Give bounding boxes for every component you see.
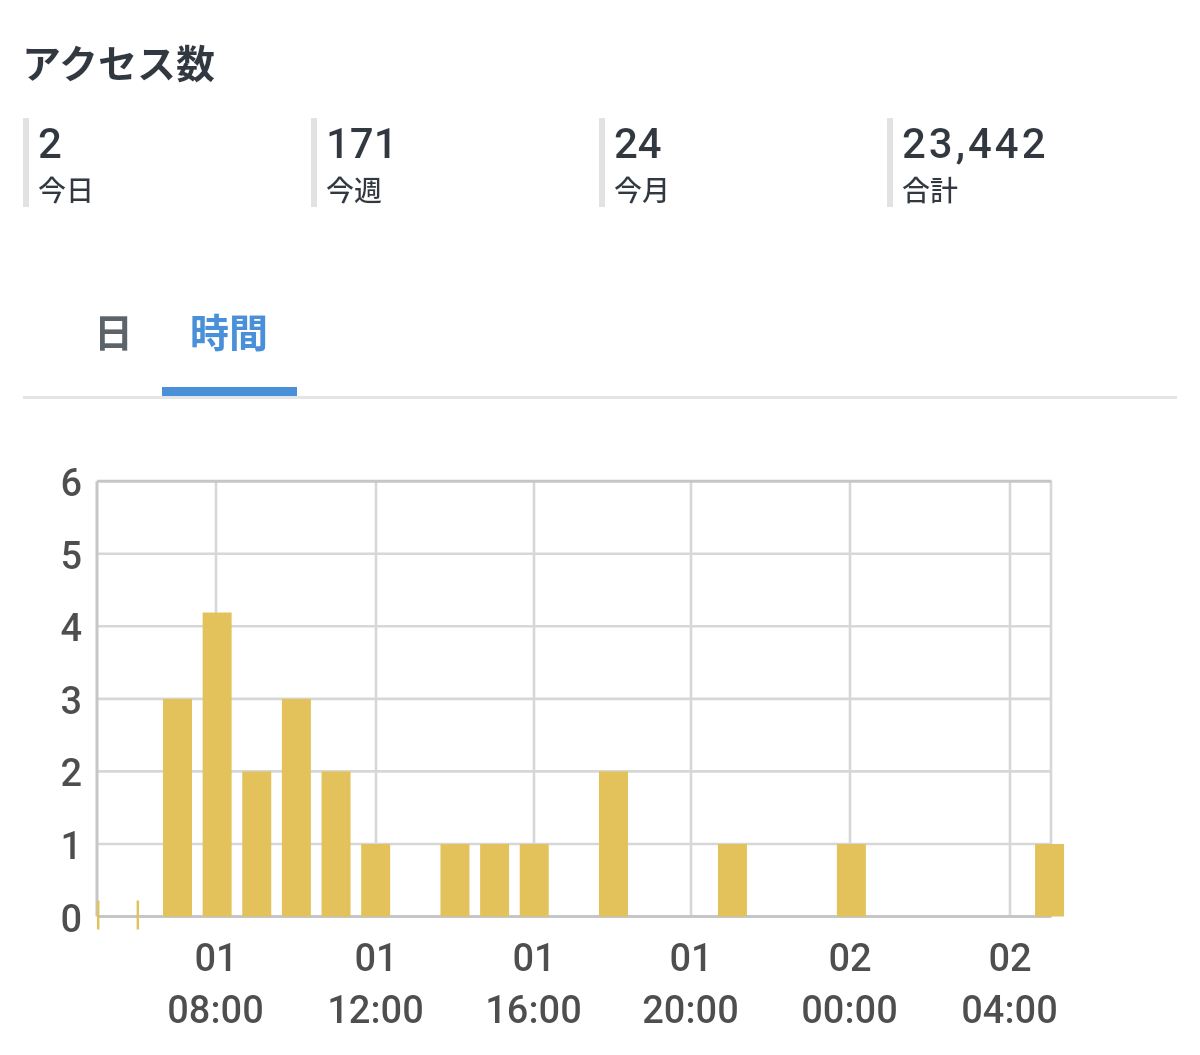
staticText: 今週 [326,169,383,207]
staticText: 合計 [902,169,959,207]
staticText: 01 [512,936,556,981]
staticText: 5 [60,534,82,579]
staticText: 1 [60,824,82,869]
button[interactable]: 日 [27,292,200,388]
staticText: 24 [614,119,662,168]
staticText: 今日 [38,169,95,207]
button[interactable]: 2 [23,118,95,207]
staticText: 08:00 [167,988,264,1033]
button[interactable]: 171 [311,118,398,207]
staticText: 2 [60,751,82,796]
staticText: 2 [38,119,62,168]
staticText: 02 [988,936,1032,981]
button[interactable]: 24 [599,118,671,207]
staticText: 日 [94,302,134,358]
staticText: 02 [828,936,872,981]
staticText: 00:00 [801,988,898,1033]
staticText: 3 [60,679,82,724]
staticText: 01 [669,936,713,981]
staticText: 今月 [614,169,671,207]
staticText: 12:00 [327,988,424,1033]
staticText: 171 [326,119,398,168]
staticText: 01 [354,936,398,981]
staticText: 01 [194,936,238,981]
staticText: アクセス数 [22,33,216,89]
button[interactable]: 時間 [162,292,297,388]
staticText: 6 [60,461,82,506]
staticText: 20:00 [642,988,739,1033]
staticText: 0 [60,897,82,942]
staticText: 23,442 [902,119,1049,168]
staticText: 16:00 [485,988,582,1033]
staticText: 04:00 [961,988,1058,1033]
staticText: 4 [60,606,82,651]
button[interactable]: 23,442 [887,118,1049,207]
staticText: 時間 [190,302,269,358]
